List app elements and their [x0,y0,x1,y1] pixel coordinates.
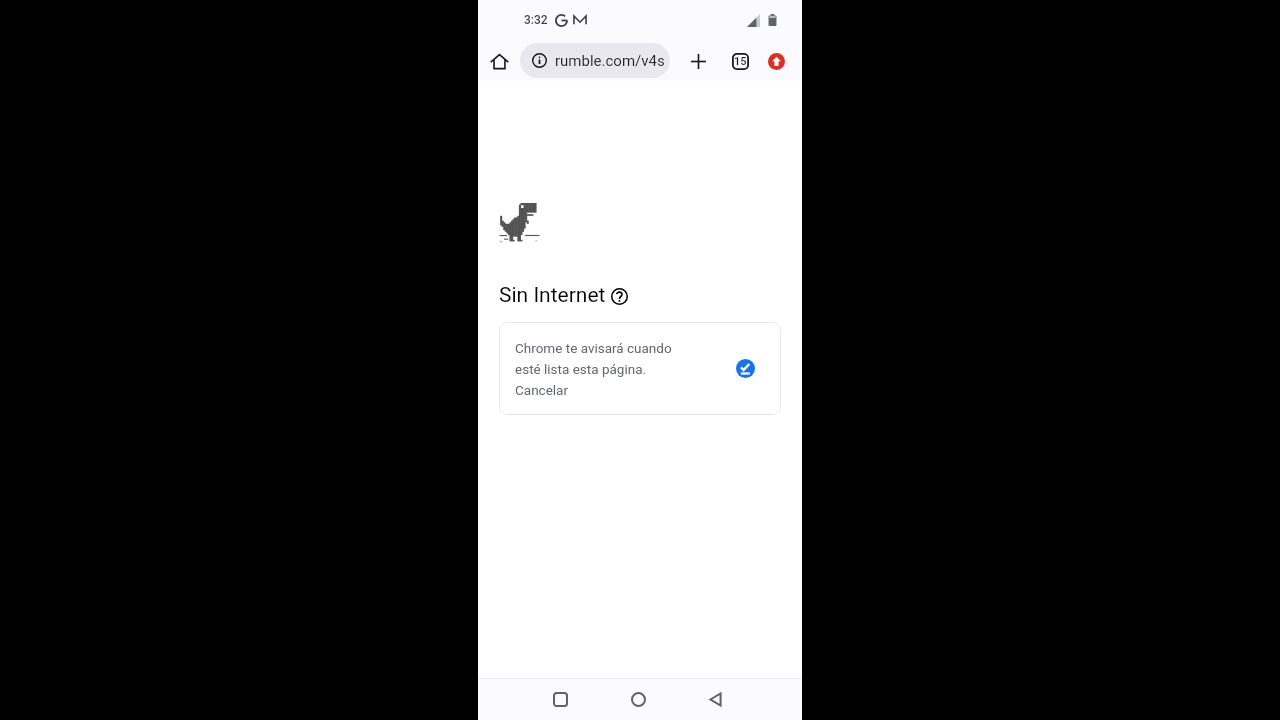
button[interactable]: Recent apps [540,679,581,720]
button[interactable]: Back [695,679,736,720]
staticText: esté lista esta página. [515,361,647,377]
button[interactable]: Update available [761,46,791,76]
staticText: Chrome te avisará cuando [515,340,672,356]
button[interactable]: Home [482,44,516,78]
button[interactable]: Home [618,679,659,720]
staticText: Cancelar [515,382,569,398]
button[interactable]: Cancelar [515,382,569,398]
staticText: rumble.com/v4s [555,52,665,70]
staticText: Sin Internet [499,283,606,308]
staticText: 15 [734,55,747,68]
button[interactable]: New tab [680,43,716,79]
staticText: 3:32 [524,13,548,27]
button[interactable]: rumble.com/v4s [520,43,670,78]
button[interactable]: Help [609,286,629,306]
button[interactable]: Switch tabs, 15 open [725,46,755,76]
button[interactable]: Notify me when ready [736,359,755,378]
